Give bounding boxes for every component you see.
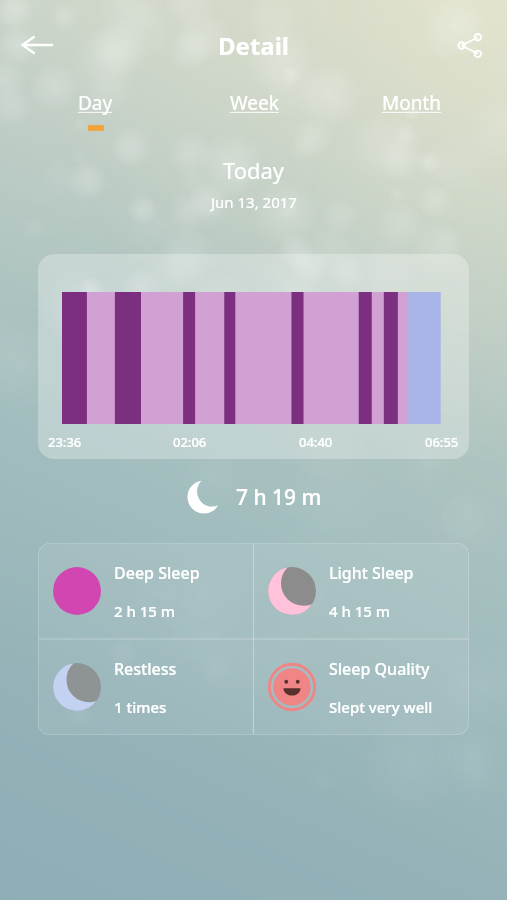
button[interactable]: Deep Sleep bbox=[38, 543, 253, 639]
staticText: Sleep Quality bbox=[329, 658, 430, 680]
button[interactable]: Restless bbox=[38, 639, 253, 735]
staticText: Deep Sleep bbox=[114, 562, 200, 584]
button[interactable]: 23:36 bbox=[38, 254, 469, 459]
button[interactable]: Week bbox=[175, 90, 333, 131]
staticText: Light Sleep bbox=[329, 562, 414, 584]
staticText: 7 h 19 m bbox=[236, 483, 322, 512]
staticText: Today bbox=[223, 155, 285, 185]
button[interactable]: Month bbox=[333, 90, 491, 131]
button[interactable]: Back bbox=[8, 16, 66, 74]
button[interactable]: Share bbox=[443, 18, 497, 72]
staticText: 1 times bbox=[114, 697, 167, 717]
staticText: Week bbox=[230, 90, 279, 116]
button[interactable]: Sleep Quality bbox=[253, 639, 469, 735]
staticText: Restless bbox=[114, 658, 177, 680]
staticText: 23:36 bbox=[48, 433, 82, 451]
button[interactable]: Light Sleep bbox=[253, 543, 469, 639]
staticText: 06:55 bbox=[425, 433, 459, 451]
button[interactable]: Day bbox=[16, 90, 175, 131]
staticText: 04:40 bbox=[299, 433, 333, 451]
staticText: Day bbox=[78, 90, 113, 116]
staticText: Jun 13, 2017 bbox=[211, 192, 297, 212]
staticText: 02:06 bbox=[173, 433, 207, 451]
staticText: Slept very well bbox=[329, 697, 433, 717]
staticText: Detail bbox=[218, 29, 290, 62]
staticText: Month bbox=[382, 90, 442, 116]
staticText: 4 h 15 m bbox=[329, 601, 391, 621]
staticText: 2 h 15 m bbox=[114, 601, 176, 621]
